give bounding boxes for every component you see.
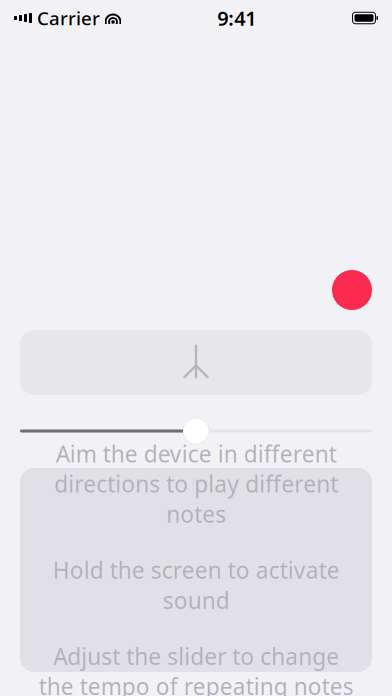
staticText: Adjust the slider to change the tempo of…	[38, 641, 353, 696]
button[interactable]: Tempo	[183, 418, 209, 444]
staticText: Carrier	[37, 6, 100, 30]
staticText: 9:41	[217, 5, 256, 31]
button[interactable]: Aim downward to play	[20, 330, 372, 395]
staticText: Hold the screen to activate sound	[52, 555, 339, 615]
staticText: Aim the device in different directions t…	[54, 439, 338, 529]
